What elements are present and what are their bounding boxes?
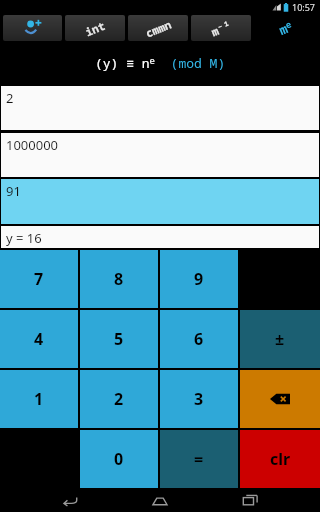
button[interactable]: int — [65, 15, 125, 41]
staticText: 10:57 — [292, 1, 316, 13]
button[interactable]: m⁻¹ — [191, 15, 251, 41]
staticText: 4 — [34, 328, 44, 350]
button[interactable]: 2 — [80, 370, 158, 428]
staticText: cmmn — [143, 16, 174, 40]
button[interactable]: 91 — [1, 179, 319, 224]
button[interactable]: Home — [140, 488, 180, 512]
staticText: = — [194, 448, 204, 470]
button[interactable]: = — [160, 430, 238, 488]
button[interactable]: Backspace — [240, 370, 320, 428]
button[interactable]: ± — [240, 310, 320, 368]
staticText: m⁻¹ — [209, 18, 233, 39]
button[interactable]: 5 — [80, 310, 158, 368]
staticText: int — [83, 18, 107, 39]
staticText: 1000000 — [6, 136, 59, 154]
button[interactable]: 3 — [160, 370, 238, 428]
staticText: 9 — [194, 268, 204, 290]
button[interactable]: 1 — [0, 370, 78, 428]
staticText: 1 — [34, 388, 44, 410]
staticText: 5 — [114, 328, 124, 350]
button[interactable]: 7 — [0, 250, 78, 308]
button[interactable]: Recents — [230, 488, 270, 512]
staticText: me — [276, 17, 296, 39]
button[interactable]: 0 — [80, 430, 158, 488]
button[interactable]: clr — [240, 430, 320, 488]
staticText: 0 — [114, 448, 124, 470]
staticText: clr — [270, 448, 291, 470]
button[interactable]: Back — [50, 488, 90, 512]
button[interactable]: 6 — [160, 310, 238, 368]
other: Add contact — [23, 18, 43, 38]
button[interactable]: Add contact — [3, 15, 62, 41]
staticText: 3 — [194, 388, 204, 410]
button[interactable]: 9 — [160, 250, 238, 308]
button[interactable]: me — [254, 15, 317, 41]
staticText: 6 — [194, 328, 204, 350]
button[interactable]: 2 — [1, 86, 319, 130]
button[interactable]: y = 16 — [1, 226, 319, 248]
button[interactable]: 1000000 — [1, 133, 319, 177]
staticText: 2 — [114, 388, 124, 410]
staticText: ± — [275, 328, 285, 350]
staticText: 2 — [6, 89, 14, 107]
button[interactable]: 8 — [80, 250, 158, 308]
staticText: y = 16 — [6, 229, 42, 247]
button[interactable]: 4 — [0, 310, 78, 368]
staticText: 7 — [34, 268, 44, 290]
staticText: 8 — [114, 268, 124, 290]
staticText: 91 — [6, 182, 21, 200]
staticText: (y) ≡ ne (mod M) — [95, 54, 226, 72]
button[interactable]: cmmn — [128, 15, 188, 41]
